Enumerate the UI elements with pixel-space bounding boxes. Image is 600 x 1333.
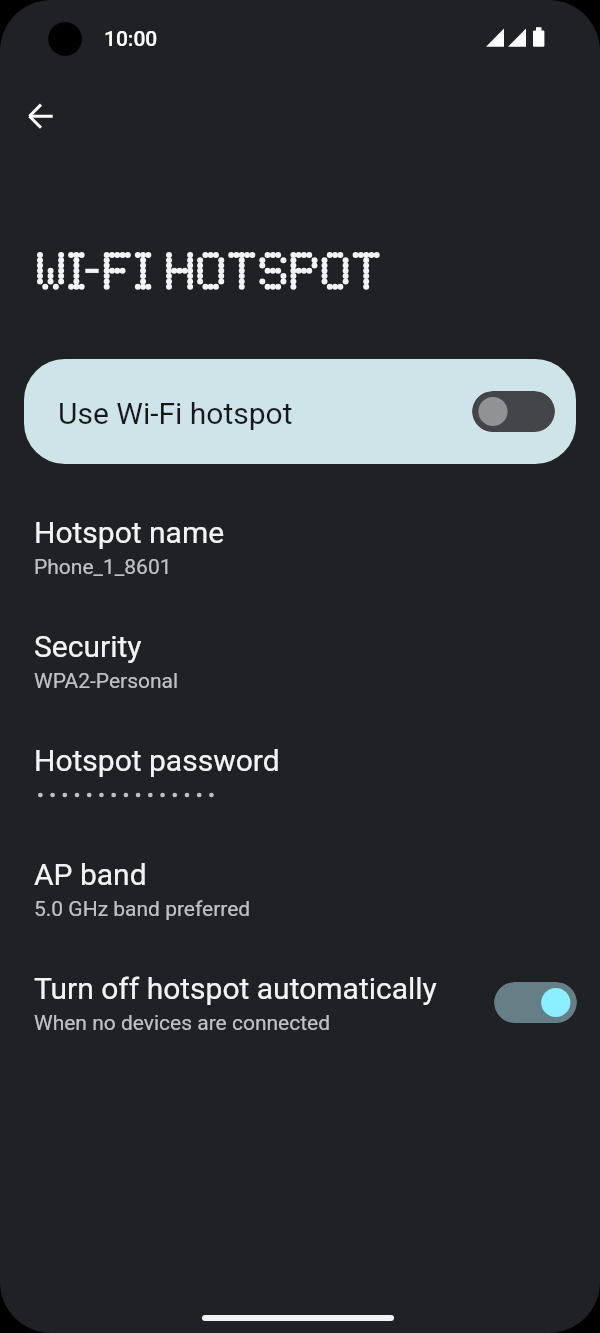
staticText: Phone_1_8601 (34, 555, 172, 580)
staticText: Hotspot name (34, 515, 225, 550)
staticText: When no devices are connected (34, 1011, 331, 1036)
button[interactable]: Hotspot password (0, 735, 600, 825)
staticText: Turn off hotspot automatically (34, 971, 437, 1006)
button[interactable]: Toggle on (494, 982, 577, 1023)
staticText: 10:00 (104, 27, 158, 52)
staticText: Hotspot password (34, 743, 280, 778)
staticText: Use Wi-Fi hotspot (58, 396, 293, 431)
staticText: Security (34, 629, 142, 664)
button[interactable]: Turn off hotspot automatically (0, 963, 600, 1053)
button[interactable]: Toggle off (472, 391, 555, 432)
staticText: 5.0 GHz band preferred (34, 897, 251, 922)
button[interactable]: Security (0, 621, 600, 711)
button[interactable]: AP band (0, 849, 600, 939)
staticText: WPA2-Personal (34, 669, 179, 694)
button[interactable]: Hotspot name (0, 507, 600, 597)
button[interactable]: Use Wi-Fi hotspot (24, 359, 576, 464)
button[interactable]: Back (17, 92, 65, 140)
staticText: AP band (34, 857, 147, 892)
